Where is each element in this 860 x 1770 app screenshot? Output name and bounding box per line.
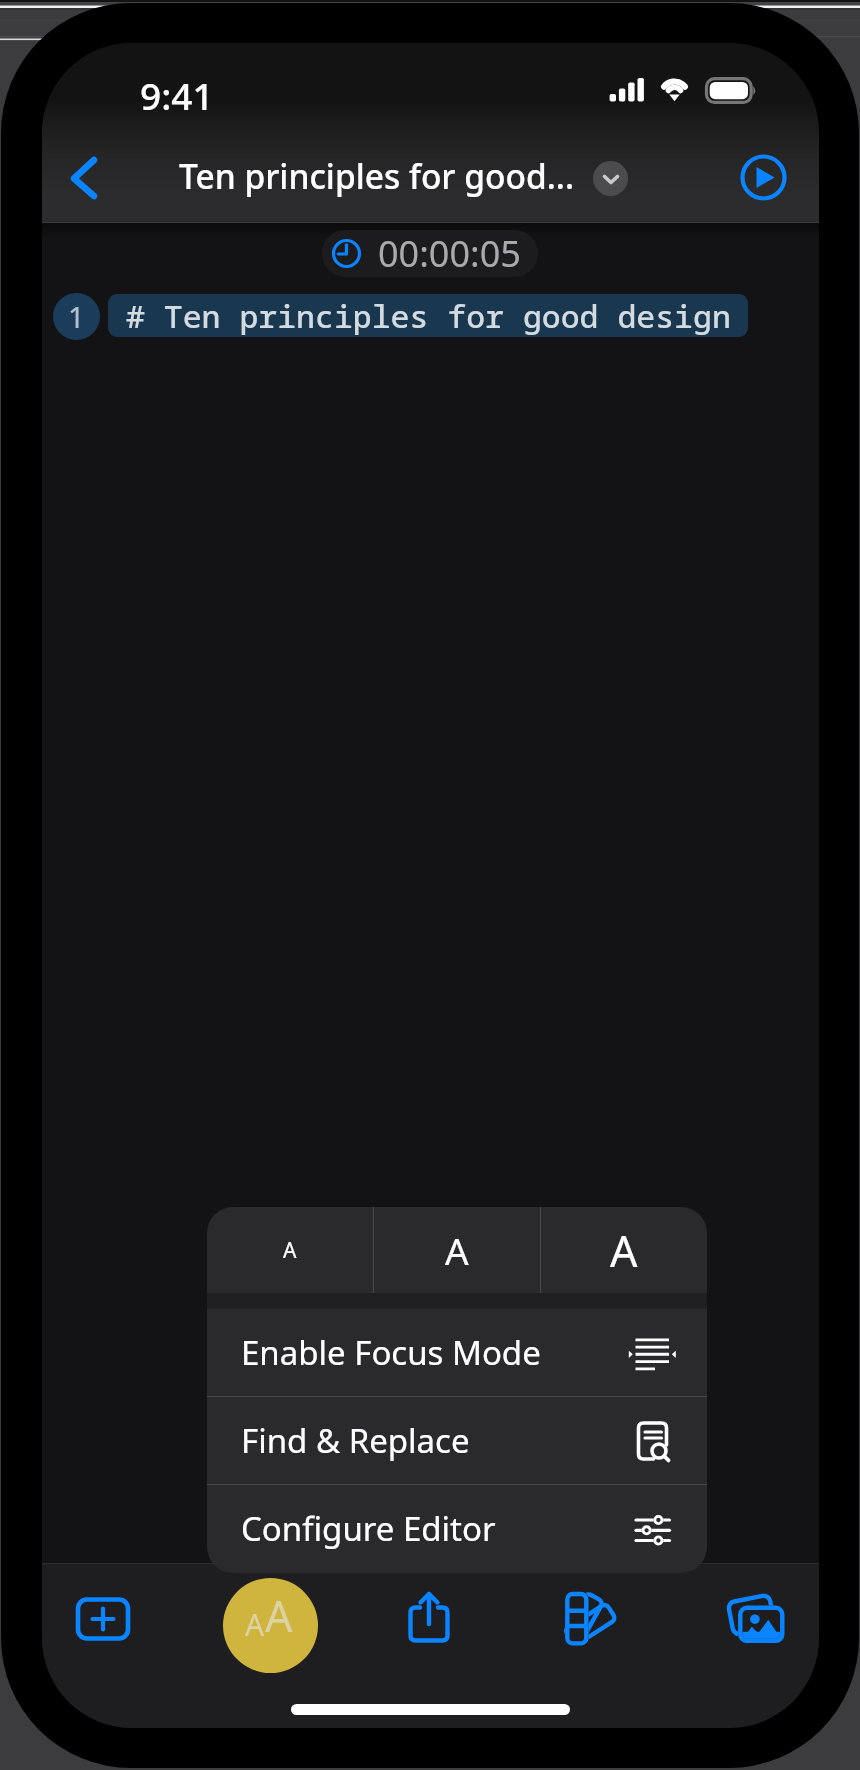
button[interactable]: Run: [739, 153, 788, 202]
staticText: 9:41: [140, 70, 214, 120]
button[interactable]: New page: [67, 1583, 139, 1655]
staticText: A: [265, 1586, 293, 1645]
button[interactable]: A: [541, 1207, 707, 1293]
button[interactable]: Text size: [223, 1578, 318, 1673]
staticText: 1: [68, 297, 85, 336]
button[interactable]: Themes: [555, 1582, 627, 1654]
staticText: Find & Replace: [241, 1418, 470, 1463]
button[interactable]: Find & Replace: [207, 1397, 707, 1484]
button[interactable]: Back: [60, 145, 112, 211]
button[interactable]: Share: [393, 1588, 465, 1660]
button[interactable]: Photos: [721, 1583, 793, 1655]
button[interactable]: A: [207, 1207, 373, 1293]
staticText: 00:00:05: [378, 230, 521, 276]
button[interactable]: Configure Editor: [207, 1485, 707, 1572]
staticText: Configure Editor: [241, 1506, 496, 1551]
staticText: A: [610, 1221, 638, 1280]
staticText: Enable Focus Mode: [241, 1330, 541, 1375]
button[interactable]: A: [374, 1207, 540, 1293]
button[interactable]: Enable Focus Mode: [207, 1309, 707, 1396]
staticText: A: [245, 1604, 265, 1645]
staticText: # Ten principles for good design: [126, 294, 731, 337]
staticText: A: [283, 1236, 297, 1265]
button[interactable]: 00:00:05: [322, 230, 538, 277]
staticText: Ten principles for good...: [179, 153, 575, 199]
button[interactable]: Document options: [593, 161, 628, 196]
staticText: A: [445, 1225, 469, 1275]
